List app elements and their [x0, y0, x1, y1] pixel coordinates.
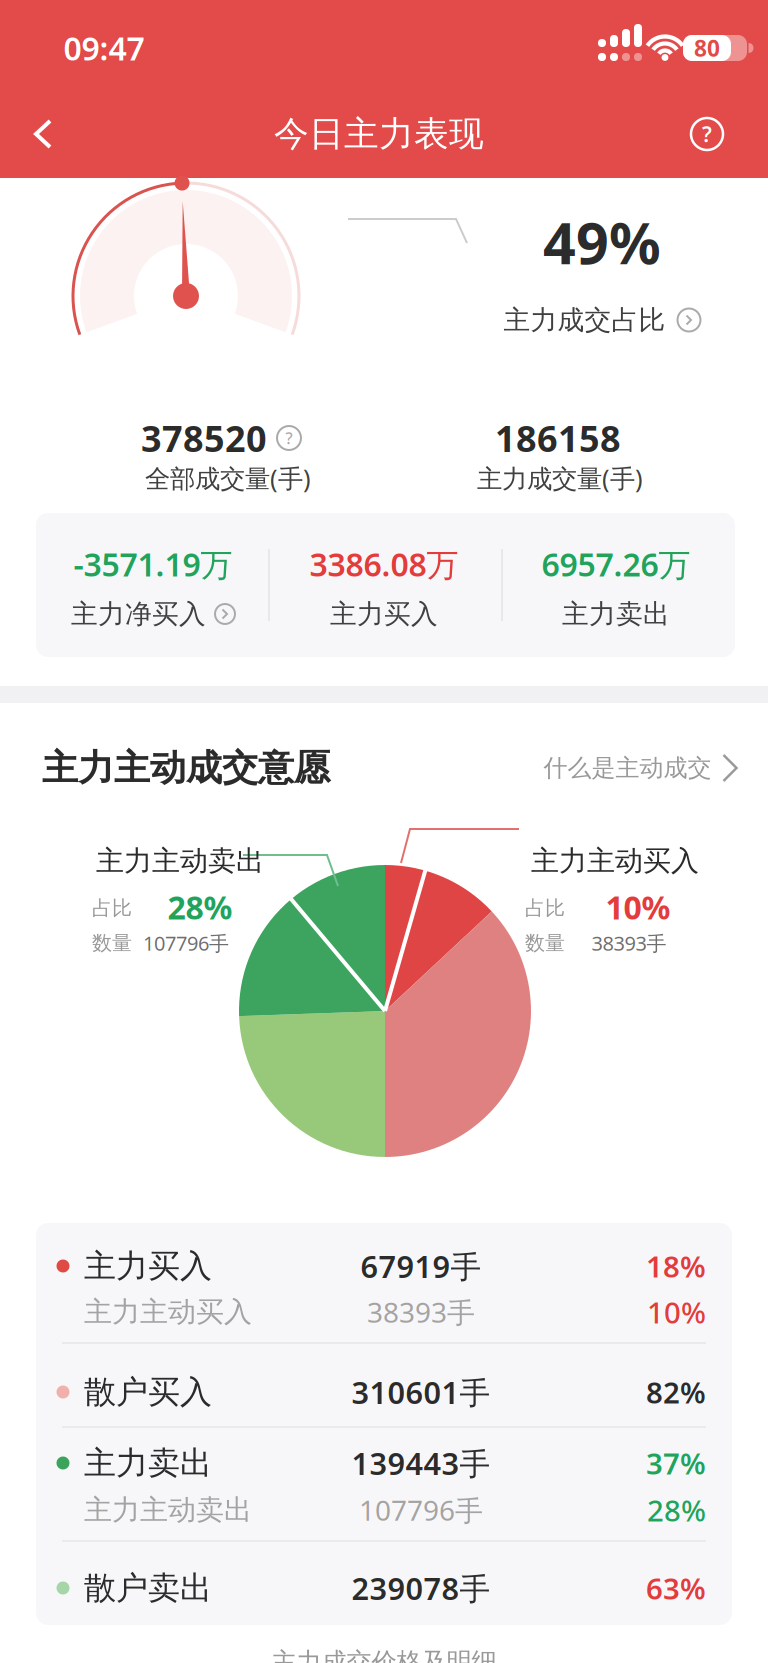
staticText: 散户买入: [84, 1372, 212, 1412]
staticText: 139443手: [351, 1443, 490, 1483]
staticText: 28%: [167, 886, 232, 928]
staticText: 主力主动卖出: [96, 844, 264, 878]
staticText: 80: [694, 33, 720, 63]
staticText: 49%: [543, 204, 661, 280]
staticText: 全部成交量(手): [145, 461, 311, 495]
staticText: 主力买入: [330, 598, 438, 630]
staticText: 186158: [495, 414, 621, 462]
button[interactable]: 全部成交量说明: [141, 416, 303, 460]
staticText: 18%: [646, 1246, 706, 1285]
staticText: 10%: [605, 886, 670, 928]
staticText: ?: [285, 427, 292, 449]
staticText: 什么是主动成交: [543, 753, 711, 783]
staticText: 主力成交量(手): [477, 461, 643, 495]
staticText: 107796手: [359, 1491, 483, 1529]
staticText: 主力成交占比: [503, 304, 665, 336]
staticText: 主力买入: [84, 1246, 212, 1286]
staticText: 主力主动卖出: [84, 1493, 252, 1527]
staticText: 82%: [646, 1372, 706, 1411]
staticText: 6957.26万: [541, 543, 690, 585]
staticText: -3571.19万: [73, 543, 232, 585]
button[interactable]: 帮助: [685, 112, 729, 156]
staticText: 239078手: [351, 1568, 490, 1608]
staticText: 占比: [525, 896, 565, 920]
staticText: 378520: [141, 414, 267, 462]
staticText: 28%: [647, 1490, 706, 1529]
staticText: 数量: [92, 931, 132, 955]
staticText: 散户卖出: [84, 1568, 212, 1608]
staticText: 67919手: [360, 1246, 481, 1286]
button[interactable]: 什么是主动成交: [543, 746, 740, 790]
staticText: 38393手: [367, 1293, 475, 1331]
button[interactable]: 主力净买入: [71, 594, 237, 634]
staticText: 主力卖出: [562, 598, 670, 630]
staticText: 主力主动成交意愿: [42, 746, 330, 790]
staticText: 数量: [525, 931, 565, 955]
staticText: 主力成交价格及明细: [271, 1646, 496, 1663]
staticText: 10%: [647, 1292, 706, 1331]
staticText: 37%: [646, 1443, 706, 1482]
staticText: 主力卖出: [84, 1443, 212, 1483]
staticText: 主力主动买入: [84, 1295, 252, 1329]
staticText: 主力主动买入: [531, 844, 699, 878]
staticText: 310601手: [351, 1372, 490, 1412]
staticText: 107796手: [143, 930, 229, 956]
staticText: 38393手: [591, 930, 666, 956]
staticText: 3386.08万: [309, 543, 458, 585]
button[interactable]: 主力成交价格及明细: [271, 1642, 496, 1663]
staticText: 今日主力表现: [274, 113, 484, 155]
button[interactable]: 主力成交占比: [503, 298, 702, 342]
button[interactable]: Back: [22, 112, 66, 156]
staticText: ?: [702, 120, 712, 148]
staticText: 63%: [646, 1568, 706, 1607]
staticText: 占比: [92, 896, 132, 920]
staticText: 主力净买入: [71, 598, 206, 630]
staticText: 09:47: [63, 27, 144, 69]
